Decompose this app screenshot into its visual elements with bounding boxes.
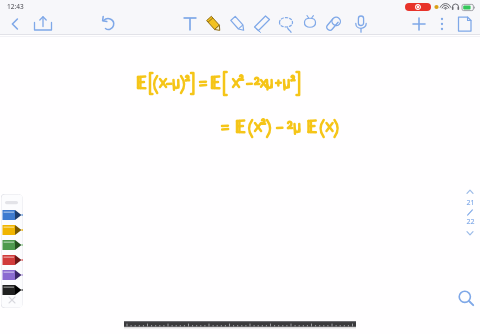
- button[interactable]: Undo: [98, 14, 120, 34]
- button[interactable]: Share: [32, 14, 54, 34]
- button[interactable]: Pen colour: [1, 283, 23, 297]
- button[interactable]: Ruler: [124, 321, 356, 328]
- button[interactable]: Eraser tool: [251, 14, 273, 34]
- staticText: 12:43: [7, 2, 24, 11]
- button[interactable]: Lasso tool: [275, 14, 297, 34]
- button[interactable]: Text tool: [179, 14, 201, 34]
- button[interactable]: Pencil tool: [203, 14, 225, 34]
- button[interactable]: Back: [4, 14, 26, 34]
- button[interactable]: Pen colour: [1, 268, 23, 282]
- button[interactable]: Record audio: [350, 14, 372, 34]
- button[interactable]: Pen colour: [1, 223, 23, 237]
- button[interactable]: Next page: [463, 228, 477, 238]
- button[interactable]: Pen colour: [1, 208, 23, 222]
- button[interactable]: Pen colour: [1, 253, 23, 267]
- button[interactable]: Pages: [454, 14, 476, 34]
- staticText: 22: [466, 217, 475, 227]
- staticText: 21: [466, 198, 475, 208]
- button[interactable]: Sticker tool: [299, 14, 321, 34]
- button[interactable]: Previous page: [463, 187, 477, 197]
- button[interactable]: Zoom: [456, 288, 476, 308]
- button[interactable]: Add: [408, 14, 430, 34]
- button[interactable]: Attach: [323, 14, 345, 34]
- button[interactable]: More options: [435, 14, 449, 34]
- button[interactable]: Pen tool: [227, 14, 249, 34]
- button[interactable]: Pen colour: [1, 238, 23, 252]
